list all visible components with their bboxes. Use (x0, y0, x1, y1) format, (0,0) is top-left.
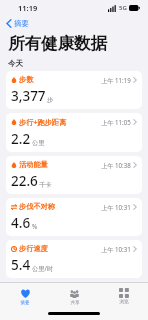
staticText: 步 (47, 96, 54, 104)
button[interactable]: 步伐不对称 (6, 198, 142, 236)
staticText: 上午 11:19 (101, 76, 131, 84)
button[interactable]: 活动能量 (6, 156, 142, 194)
button[interactable]: 浏览 (99, 283, 148, 310)
staticText: 公里 (32, 139, 45, 147)
button[interactable]: 摘要 (0, 16, 29, 30)
staticText: 上午 10:31 (101, 203, 131, 211)
staticText: 今天 (8, 59, 23, 68)
staticText: 公里/时 (32, 264, 54, 273)
staticText: 步数 (19, 75, 34, 84)
staticText: 所有健康数据 (8, 33, 107, 54)
staticText: 摘要 (20, 300, 30, 306)
staticText: 步行+跑步距离 (19, 117, 67, 127)
staticText: 活动能量 (19, 160, 48, 169)
staticText: 摘要 (14, 19, 29, 28)
staticText: 千卡 (39, 181, 52, 189)
staticText: 上午 10:31 (101, 245, 131, 253)
staticText: 4.6 (11, 214, 31, 232)
staticText: 11:19 (18, 3, 38, 13)
staticText: 浏览 (119, 299, 129, 305)
staticText: 5G (119, 4, 127, 12)
staticText: 5.4 (11, 256, 31, 274)
staticText: 步伐不对称 (19, 202, 55, 211)
button[interactable]: 步数 (6, 71, 142, 109)
staticText: 22.6 (11, 172, 38, 190)
staticText: 上午 11:05 (101, 118, 131, 126)
button[interactable]: 步行+跑步距离 (6, 113, 142, 152)
staticText: % (32, 222, 38, 231)
staticText: 3,377 (11, 87, 46, 105)
button[interactable]: 共享 (50, 283, 99, 310)
staticText: 上午 10:38 (101, 161, 131, 169)
staticText: 步行速度 (19, 244, 48, 253)
button[interactable]: 摘要 (0, 283, 50, 310)
button[interactable]: 步行速度 (6, 240, 142, 278)
staticText: 2.2 (11, 130, 31, 148)
staticText: 共享 (70, 300, 80, 306)
